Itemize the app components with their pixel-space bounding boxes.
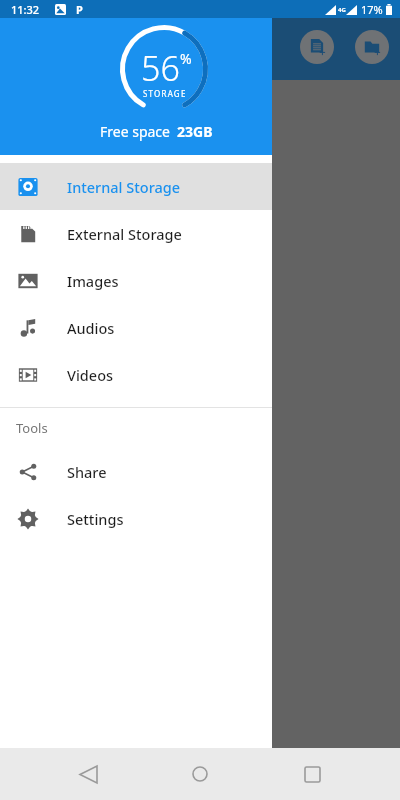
button[interactable]: External Storage bbox=[0, 210, 272, 257]
staticText: Settings bbox=[67, 509, 124, 529]
staticText: 23GB bbox=[177, 122, 213, 141]
staticText: 4G bbox=[338, 6, 346, 14]
staticText: Tools bbox=[16, 419, 48, 437]
button[interactable]: Images bbox=[0, 257, 272, 304]
button[interactable]: Videos bbox=[0, 351, 272, 398]
staticText: Free space bbox=[100, 122, 170, 141]
staticText: 56 bbox=[141, 45, 180, 91]
staticText: 17% bbox=[361, 2, 383, 17]
button[interactable]: New folder bbox=[355, 30, 389, 64]
button[interactable]: Recent apps bbox=[288, 750, 336, 798]
staticText: 11:32 bbox=[11, 2, 40, 17]
button[interactable]: Back bbox=[64, 750, 112, 798]
staticText: Videos bbox=[67, 365, 114, 385]
staticText: STORAGE bbox=[143, 88, 187, 99]
staticText: Internal Storage bbox=[67, 177, 181, 197]
staticText: Images bbox=[67, 271, 119, 291]
button[interactable]: Internal Storage bbox=[0, 163, 272, 210]
button[interactable]: New file bbox=[300, 30, 334, 64]
button[interactable]: Audios bbox=[0, 304, 272, 351]
staticText: External Storage bbox=[67, 224, 182, 244]
button[interactable]: Home bbox=[176, 750, 224, 798]
staticText: P bbox=[76, 2, 83, 17]
staticText: Audios bbox=[67, 318, 115, 338]
staticText: % bbox=[180, 49, 192, 68]
button[interactable]: Settings bbox=[0, 495, 272, 542]
button[interactable]: Share bbox=[0, 448, 272, 495]
staticText: Share bbox=[67, 462, 107, 482]
